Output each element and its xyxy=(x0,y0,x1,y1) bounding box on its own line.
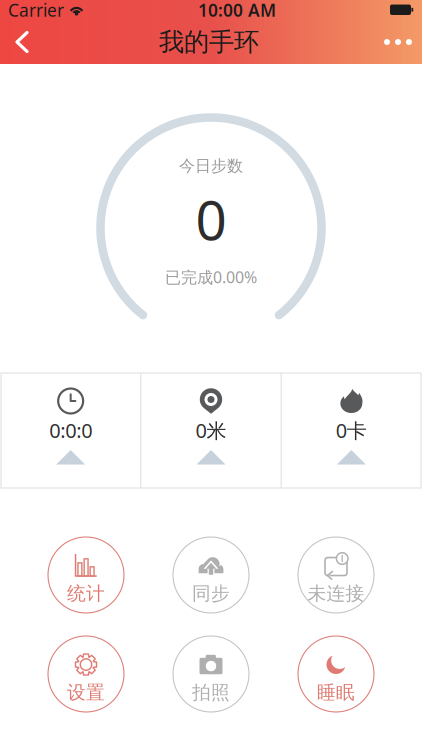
button[interactable]: More options xyxy=(374,20,422,64)
staticText: 0:0:0 xyxy=(49,417,92,444)
staticText: 拍照 xyxy=(192,681,230,704)
button[interactable]: 统计 xyxy=(48,537,124,613)
staticText: 0米 xyxy=(195,417,226,444)
button[interactable]: 未连接 xyxy=(298,537,374,613)
button[interactable]: 设置 xyxy=(48,636,124,712)
staticText: 同步 xyxy=(192,582,230,605)
button[interactable]: Back xyxy=(0,20,44,64)
staticText: 统计 xyxy=(67,582,105,605)
button[interactable]: 同步 xyxy=(173,537,249,613)
staticText: 0 xyxy=(195,183,226,255)
staticText: 10:00 AM xyxy=(198,0,276,21)
staticText: 未连接 xyxy=(307,582,364,605)
staticText: 设置 xyxy=(67,681,105,704)
staticText: 今日步数 xyxy=(179,156,243,176)
staticText: 我的手环 xyxy=(159,26,259,57)
button[interactable]: 拍照 xyxy=(173,636,249,712)
staticText: 睡眠 xyxy=(317,681,355,704)
staticText: 0卡 xyxy=(336,417,367,444)
staticText: Carrier xyxy=(8,0,64,21)
staticText: 已完成0.00% xyxy=(165,266,257,288)
button[interactable]: 睡眠 xyxy=(298,636,374,712)
